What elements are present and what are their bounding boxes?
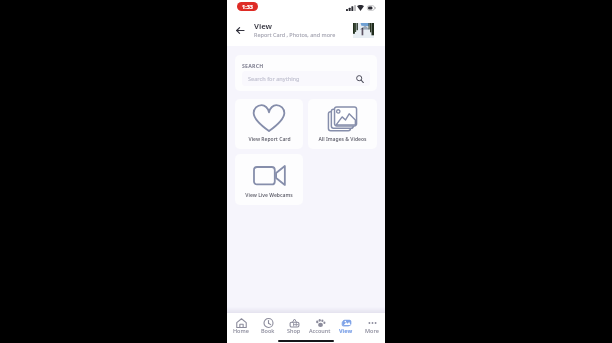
staticText: View — [339, 327, 353, 334]
staticText: SEARCH — [242, 62, 264, 69]
staticText: Home — [233, 327, 249, 334]
staticText: Book — [261, 327, 275, 334]
button[interactable]: View — [333, 318, 359, 340]
staticText: Search for anything — [248, 75, 300, 83]
button[interactable]: Profile photo — [353, 23, 374, 38]
staticText: View Report Card — [248, 136, 291, 143]
button[interactable]: Book — [254, 318, 281, 340]
staticText: View — [254, 21, 273, 31]
staticText: Account — [309, 327, 331, 334]
button[interactable]: Home — [227, 318, 254, 340]
button[interactable]: View Live Webcams — [235, 154, 303, 205]
button[interactable]: All Images & Videos — [308, 99, 377, 149]
button[interactable]: Account — [307, 318, 333, 340]
button[interactable]: Shop — [281, 318, 307, 340]
staticText: All Images & Videos — [318, 136, 367, 143]
button[interactable]: View Report Card — [235, 99, 303, 149]
staticText: More — [365, 327, 379, 334]
staticText: 1:33 — [242, 3, 253, 10]
staticText: Report Card , Photos, and more — [254, 31, 336, 38]
staticText: Shop — [287, 327, 301, 334]
button[interactable]: Back — [231, 21, 249, 39]
button[interactable]: More — [359, 318, 385, 340]
button[interactable]: Search for anything — [242, 71, 370, 86]
staticText: View Live Webcams — [245, 192, 293, 199]
